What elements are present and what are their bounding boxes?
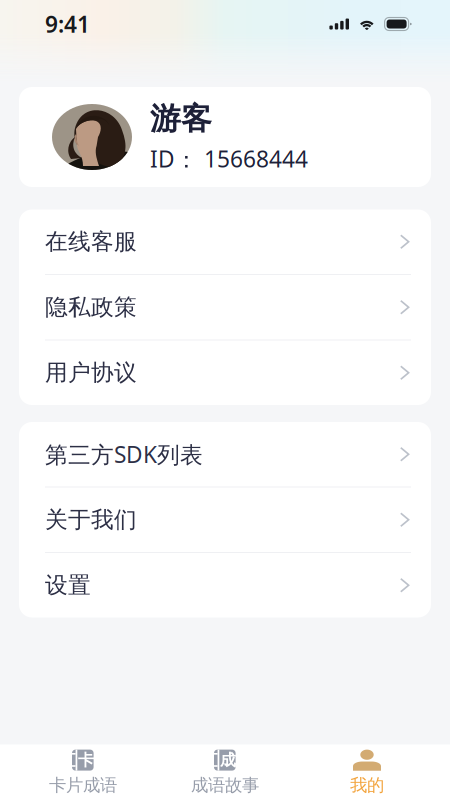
staticText: 在线客服	[45, 228, 137, 256]
button[interactable]: 在线客服	[19, 209, 431, 274]
button[interactable]: 用户协议	[19, 340, 431, 405]
staticText: 游客	[150, 100, 212, 138]
button[interactable]: 隐私政策	[19, 275, 431, 339]
staticText: 关于我们	[45, 506, 137, 534]
staticText: 成	[220, 750, 236, 770]
staticText: 我的	[350, 775, 384, 796]
button[interactable]: 成	[154, 744, 296, 800]
button[interactable]: 我的	[296, 744, 438, 800]
staticText: 第三方SDK列表	[45, 439, 203, 469]
staticText: ID： 15668444	[150, 144, 308, 174]
staticText: 设置	[45, 571, 91, 599]
staticText: 成语故事	[191, 775, 259, 796]
staticText: 用户协议	[45, 359, 137, 387]
button[interactable]: 卡	[12, 744, 154, 800]
button[interactable]: 第三方SDK列表	[19, 422, 431, 486]
staticText: 卡	[78, 750, 94, 770]
button[interactable]: 游客	[19, 87, 431, 187]
button[interactable]: 设置	[19, 553, 431, 617]
staticText: 9:41	[45, 9, 90, 39]
staticText: 隐私政策	[45, 293, 137, 321]
button[interactable]: 关于我们	[19, 487, 431, 552]
staticText: 卡片成语	[49, 775, 117, 796]
